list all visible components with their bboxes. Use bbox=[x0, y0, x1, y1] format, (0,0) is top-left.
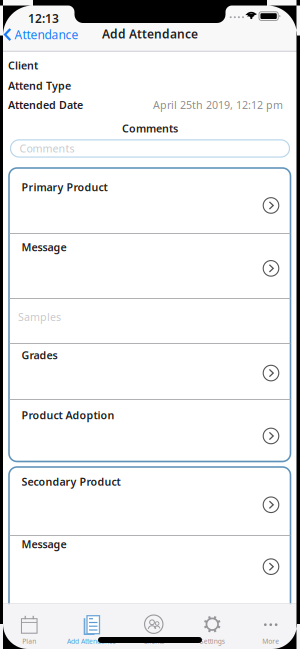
staticText: Attend Type bbox=[8, 78, 71, 93]
staticText: Message bbox=[21, 240, 66, 254]
staticText: Primary Product bbox=[21, 180, 107, 194]
button[interactable]: Attended Date bbox=[0, 93, 300, 112]
staticText: Settings bbox=[200, 637, 225, 646]
button[interactable]: Message bbox=[9, 234, 290, 298]
staticText: Comments bbox=[19, 141, 74, 156]
staticText: April 25th 2019, 12:12 pm bbox=[153, 98, 283, 112]
staticText: Add Attendance bbox=[67, 637, 116, 646]
button[interactable]: Primary Product bbox=[9, 168, 290, 233]
button[interactable]: Samples bbox=[9, 299, 61, 343]
button[interactable]: Add Attendance bbox=[58, 604, 124, 649]
button[interactable]: Secondary Product bbox=[9, 467, 290, 535]
staticText: Message bbox=[21, 537, 66, 551]
staticText: Samples bbox=[18, 310, 61, 324]
staticText: Grades bbox=[21, 348, 57, 362]
staticText: Add Attendance bbox=[102, 26, 198, 42]
button[interactable]: Client bbox=[0, 52, 300, 72]
staticText: Comments bbox=[122, 121, 178, 135]
button[interactable]: Product Adoption bbox=[9, 400, 290, 461]
button[interactable]: Grades bbox=[9, 344, 290, 399]
staticText: More bbox=[262, 637, 279, 646]
staticText: Clients bbox=[143, 637, 164, 646]
staticText: 12:13 bbox=[28, 10, 59, 26]
button[interactable]: Attend Type bbox=[0, 72, 300, 93]
button[interactable]: Comments bbox=[0, 140, 300, 157]
staticText: Client bbox=[8, 58, 38, 72]
button[interactable]: Message bbox=[9, 536, 290, 625]
staticText: Product Adoption bbox=[21, 408, 114, 422]
button[interactable]: More bbox=[241, 604, 300, 649]
staticText: Attendance bbox=[14, 27, 78, 42]
button[interactable]: Attendance bbox=[0, 27, 78, 42]
staticText: Attended Date bbox=[8, 98, 83, 112]
staticText: Plan bbox=[22, 637, 36, 646]
staticText: Secondary Product bbox=[21, 474, 120, 489]
button[interactable]: Clients bbox=[124, 604, 183, 649]
button[interactable]: Plan bbox=[0, 604, 58, 649]
button[interactable]: Settings bbox=[183, 604, 241, 649]
